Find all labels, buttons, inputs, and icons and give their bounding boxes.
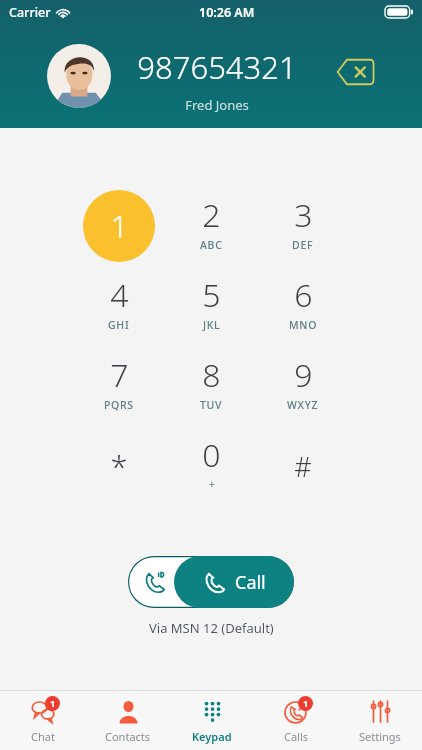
staticText: 10:26 AM: [199, 4, 255, 21]
staticText: WXYZ: [287, 398, 319, 412]
staticText: Chat: [31, 729, 55, 744]
button[interactable]: 4: [79, 266, 159, 346]
button[interactable]: 9: [263, 346, 343, 426]
staticText: 3: [294, 193, 313, 237]
staticText: 1: [303, 697, 309, 710]
button[interactable]: Caller ID: [128, 556, 294, 608]
button[interactable]: Keypad: [170, 691, 254, 750]
staticText: Calls: [284, 729, 309, 744]
button[interactable]: 6: [263, 266, 343, 346]
staticText: GHI: [108, 318, 130, 332]
staticText: 1: [110, 204, 129, 248]
staticText: Call: [235, 570, 266, 595]
staticText: *: [110, 445, 128, 487]
staticText: Fred Jones: [185, 96, 249, 114]
staticText: Via MSN 12 (Default): [149, 619, 274, 637]
staticText: ABC: [200, 238, 223, 252]
button[interactable]: 7: [79, 346, 159, 426]
staticText: Contacts: [105, 729, 151, 744]
button[interactable]: 1: [0, 691, 85, 750]
button[interactable]: 1: [79, 186, 159, 266]
staticText: 6: [294, 273, 313, 317]
staticText: MNO: [289, 318, 318, 332]
button[interactable]: 5: [171, 266, 251, 346]
staticText: DEF: [292, 238, 314, 252]
button[interactable]: #: [263, 426, 343, 506]
staticText: #: [294, 448, 312, 485]
button[interactable]: Call: [174, 556, 294, 608]
button[interactable]: 8: [171, 346, 251, 426]
staticText: TUV: [200, 398, 223, 412]
staticText: PQRS: [104, 398, 134, 412]
staticText: 5: [202, 273, 221, 317]
button[interactable]: 3: [263, 186, 343, 266]
staticText: 4: [110, 273, 129, 317]
staticText: 7: [110, 353, 129, 397]
button[interactable]: 0: [171, 426, 251, 506]
button[interactable]: Contacts: [85, 691, 170, 750]
button[interactable]: Delete: [334, 55, 380, 89]
staticText: 9: [294, 353, 313, 397]
staticText: Settings: [359, 729, 401, 744]
staticText: +: [209, 477, 215, 491]
staticText: 2: [202, 193, 221, 237]
button[interactable]: *: [79, 426, 159, 506]
staticText: 0: [202, 433, 221, 477]
staticText: Carrier: [9, 4, 51, 21]
staticText: JKL: [203, 318, 221, 332]
staticText: Keypad: [192, 729, 232, 744]
button[interactable]: Settings: [338, 691, 422, 750]
staticText: 987654321: [137, 46, 297, 88]
other: Caller ID: [143, 571, 166, 594]
button[interactable]: Contact photo: [47, 44, 111, 108]
staticText: 8: [202, 353, 221, 397]
staticText: 1: [50, 697, 56, 710]
button[interactable]: 2: [171, 186, 251, 266]
button[interactable]: 1: [254, 691, 338, 750]
